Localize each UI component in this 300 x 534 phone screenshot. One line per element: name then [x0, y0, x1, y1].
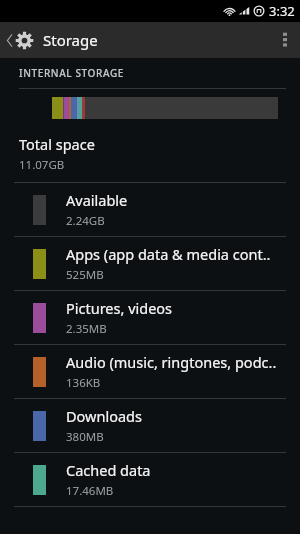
staticText: Pictures, videos — [66, 298, 173, 318]
button[interactable]: Storage — [0, 22, 106, 58]
button[interactable]: More options — [270, 22, 300, 58]
staticText: Storage — [43, 30, 98, 50]
staticText: Apps (app data & media cont.. — [66, 244, 271, 264]
staticText: INTERNAL STORAGE — [19, 66, 124, 80]
staticText: 136KB — [66, 375, 101, 391]
button[interactable]: Available — [0, 183, 300, 236]
staticText: Cached data — [66, 460, 151, 480]
button[interactable]: Apps (app data & media cont.. — [0, 237, 300, 290]
button[interactable]: Downloads — [0, 399, 300, 452]
staticText: 2.35MB — [66, 321, 107, 337]
button[interactable]: Pictures, videos — [0, 291, 300, 344]
staticText: 11.07GB — [19, 157, 65, 173]
staticText: Total space — [19, 134, 95, 154]
staticText: 380MB — [66, 429, 104, 445]
staticText: Downloads — [66, 406, 142, 426]
button[interactable]: Total space — [0, 127, 300, 182]
staticText: Audio (music, ringtones, podc.. — [66, 352, 277, 372]
staticText: 525MB — [66, 267, 104, 283]
staticText: Available — [66, 190, 128, 210]
button[interactable]: Audio (music, ringtones, podc.. — [0, 345, 300, 398]
staticText: 2.24GB — [66, 213, 105, 229]
button[interactable]: Cached data — [0, 453, 300, 506]
staticText: 3:32 — [269, 2, 295, 20]
staticText: 17.46MB — [66, 483, 114, 499]
